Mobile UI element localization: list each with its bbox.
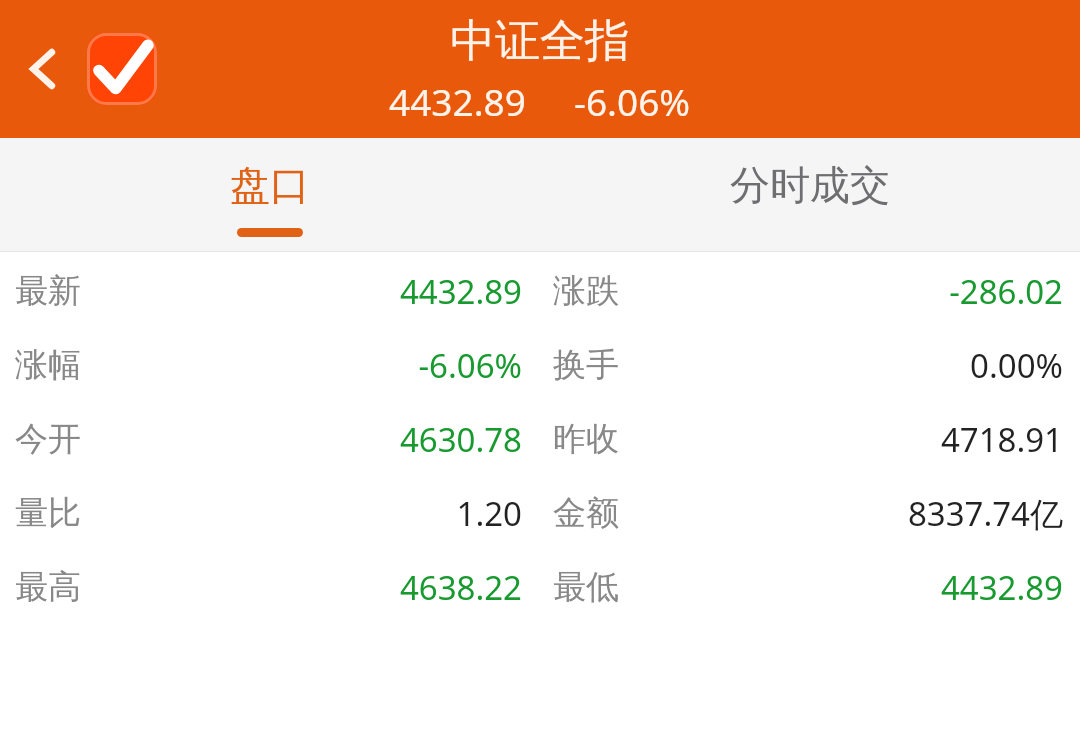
button[interactable]: Back (6, 32, 80, 106)
button[interactable]: 量比 (0, 476, 1080, 550)
button[interactable]: 最新 (0, 254, 1080, 328)
staticText: 今开 (15, 418, 81, 460)
button[interactable]: 最高 (0, 550, 1080, 624)
staticText: 涨跌 (553, 270, 619, 312)
staticText: 量比 (15, 492, 81, 534)
button[interactable]: 盘口 (0, 138, 540, 252)
button[interactable]: 分时成交 (540, 138, 1080, 252)
button[interactable]: 涨幅 (0, 328, 1080, 402)
staticText: 8337.74亿 (653, 491, 1063, 536)
staticText: 1.20 (115, 491, 522, 536)
staticText: 0.00% (653, 343, 1063, 388)
staticText: 4718.91 (653, 417, 1063, 462)
staticText: 最新 (15, 270, 81, 312)
button[interactable]: 今开 (0, 402, 1080, 476)
staticText: 4630.78 (115, 417, 522, 462)
staticText: 4432.89 (115, 269, 522, 314)
staticText: 4638.22 (115, 565, 522, 610)
staticText: 4432.89 (389, 76, 526, 126)
staticText: 金额 (553, 492, 619, 534)
staticText: 盘口 (230, 160, 310, 210)
staticText: 最低 (553, 566, 619, 608)
staticText: 分时成交 (730, 160, 890, 210)
staticText: -6.06% (115, 343, 522, 388)
staticText: 最高 (15, 566, 81, 608)
staticText: -286.02 (653, 269, 1063, 314)
staticText: 昨收 (553, 418, 619, 460)
button[interactable]: Added to watchlist (86, 32, 158, 106)
staticText: -6.06% (574, 76, 691, 126)
staticText: 中证全指 (450, 13, 630, 70)
staticText: 涨幅 (15, 344, 81, 386)
staticText: 换手 (553, 344, 619, 386)
staticText: 4432.89 (653, 565, 1063, 610)
